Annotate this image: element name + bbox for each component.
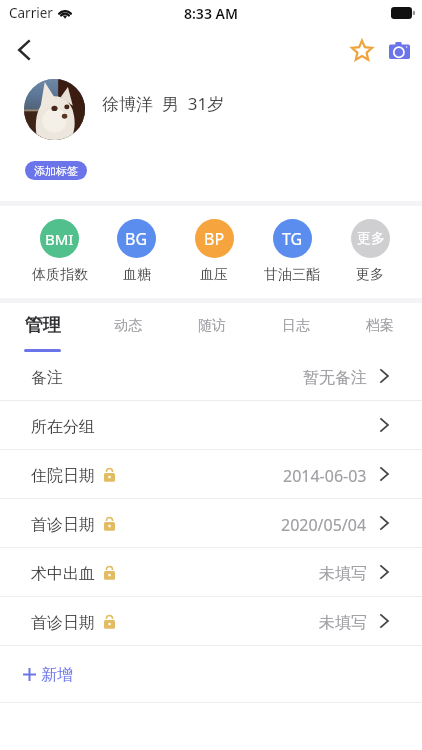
button[interactable]: 术中出血 <box>0 548 422 596</box>
button[interactable]: BP <box>175 206 253 284</box>
button[interactable]: TG <box>253 206 331 284</box>
staticText: 日志 <box>282 317 310 335</box>
staticText: BP <box>204 228 225 250</box>
staticText: 术中出血 <box>31 564 95 584</box>
button[interactable]: BG <box>98 206 175 284</box>
staticText: 2020/05/04 <box>281 514 367 536</box>
staticText: 2014-06-03 <box>283 465 367 487</box>
button[interactable]: 新增 <box>0 646 422 702</box>
button[interactable]: 所在分组 <box>0 401 422 449</box>
button[interactable]: 档案 <box>338 303 422 352</box>
staticText: 血糖 <box>123 266 151 284</box>
button[interactable]: 管理 <box>0 303 85 352</box>
button[interactable]: 住院日期 <box>0 450 422 498</box>
staticText: 首诊日期 <box>31 515 95 535</box>
button[interactable]: 备注 <box>0 352 422 400</box>
button[interactable]: Camera <box>386 37 412 63</box>
button[interactable]: 首诊日期 <box>0 597 422 645</box>
staticText: Carrier <box>9 4 53 22</box>
staticText: 所在分组 <box>31 417 95 437</box>
button[interactable]: Back <box>4 30 44 70</box>
staticText: 甘油三酯 <box>264 266 320 284</box>
button[interactable]: 随访 <box>170 303 254 352</box>
staticText: 添加标签 <box>34 164 78 178</box>
staticText: 备注 <box>31 368 63 388</box>
staticText: 8:33 AM <box>184 4 238 23</box>
button[interactable]: 动态 <box>85 303 170 352</box>
button[interactable]: Avatar <box>24 79 85 140</box>
staticText: BMI <box>45 229 74 249</box>
staticText: 体质指数 <box>32 266 88 284</box>
staticText: BG <box>125 228 148 250</box>
staticText: 未填写 <box>319 564 367 584</box>
staticText: TG <box>282 228 303 250</box>
button[interactable]: Favorite <box>348 36 376 64</box>
staticText: 血压 <box>200 266 228 284</box>
button[interactable]: 更多 <box>331 206 409 284</box>
button[interactable]: BMI <box>21 206 98 284</box>
staticText: 首诊日期 <box>31 613 95 633</box>
staticText: 档案 <box>366 317 394 335</box>
staticText: 随访 <box>198 317 226 335</box>
staticText: 更多 <box>357 230 385 248</box>
staticText: 管理 <box>25 314 61 337</box>
staticText: 暂无备注 <box>303 368 367 388</box>
staticText: 未填写 <box>319 613 367 633</box>
staticText: 徐博洋 男 31岁 <box>102 92 225 115</box>
button[interactable]: 添加标签 <box>25 161 87 180</box>
staticText: 住院日期 <box>31 466 95 486</box>
staticText: 新增 <box>41 665 73 685</box>
button[interactable]: 日志 <box>254 303 338 352</box>
staticText: 更多 <box>356 266 384 284</box>
staticText: 动态 <box>114 317 142 335</box>
button[interactable]: 首诊日期 <box>0 499 422 547</box>
